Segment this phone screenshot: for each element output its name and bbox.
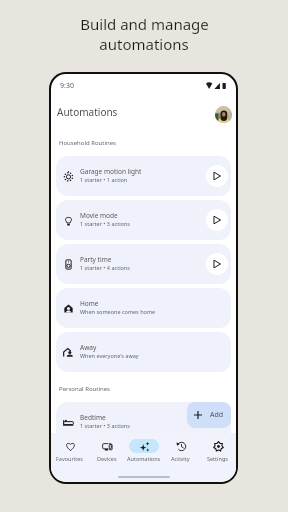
button[interactable]: Automations <box>125 439 162 462</box>
staticText: 1 starter • 1 action <box>80 176 128 183</box>
button[interactable]: Party time <box>56 244 231 284</box>
staticText: Household Routines <box>59 139 116 147</box>
button[interactable]: Account <box>215 106 232 123</box>
button[interactable]: Devices <box>88 439 125 462</box>
staticText: Party time <box>80 255 112 264</box>
button[interactable]: Bedtime <box>56 402 231 442</box>
button[interactable]: Movie mode <box>56 200 231 240</box>
staticText: Home <box>80 299 99 308</box>
button[interactable]: Add <box>187 402 231 428</box>
button[interactable]: Garage motion light <box>56 156 231 196</box>
staticText: Favourites <box>56 455 83 462</box>
staticText: Garage motion light <box>80 167 142 176</box>
staticText: Automations <box>127 455 161 462</box>
staticText: Devices <box>97 455 117 462</box>
button[interactable]: Home <box>56 288 231 328</box>
staticText: 1 starter • 4 actions <box>80 264 130 271</box>
staticText: When everyone's away <box>80 352 139 359</box>
button[interactable]: Play <box>206 253 228 275</box>
staticText: Settings <box>207 455 228 462</box>
staticText: Activity <box>171 455 190 462</box>
staticText: Away <box>80 343 97 352</box>
staticText: Add <box>210 410 224 420</box>
button[interactable]: Settings <box>199 439 236 462</box>
staticText: Build and manage <box>80 14 209 34</box>
staticText: automations <box>99 34 189 54</box>
button[interactable]: Favourites <box>51 439 88 462</box>
staticText: 1 starter • 3 actions <box>80 220 130 227</box>
staticText: Personal Routines <box>59 385 110 393</box>
button[interactable]: Activity <box>162 439 199 462</box>
staticText: Bedtime <box>80 413 106 422</box>
button[interactable]: Play <box>206 209 228 231</box>
staticText: 9:30 <box>60 81 74 91</box>
button[interactable]: Away <box>56 332 231 372</box>
staticText: Movie mode <box>80 211 118 220</box>
button[interactable]: Play <box>206 165 228 187</box>
staticText: Automations <box>57 105 118 119</box>
staticText: 1 starter • 3 actions <box>80 422 130 429</box>
staticText: When someone comes home <box>80 308 156 315</box>
